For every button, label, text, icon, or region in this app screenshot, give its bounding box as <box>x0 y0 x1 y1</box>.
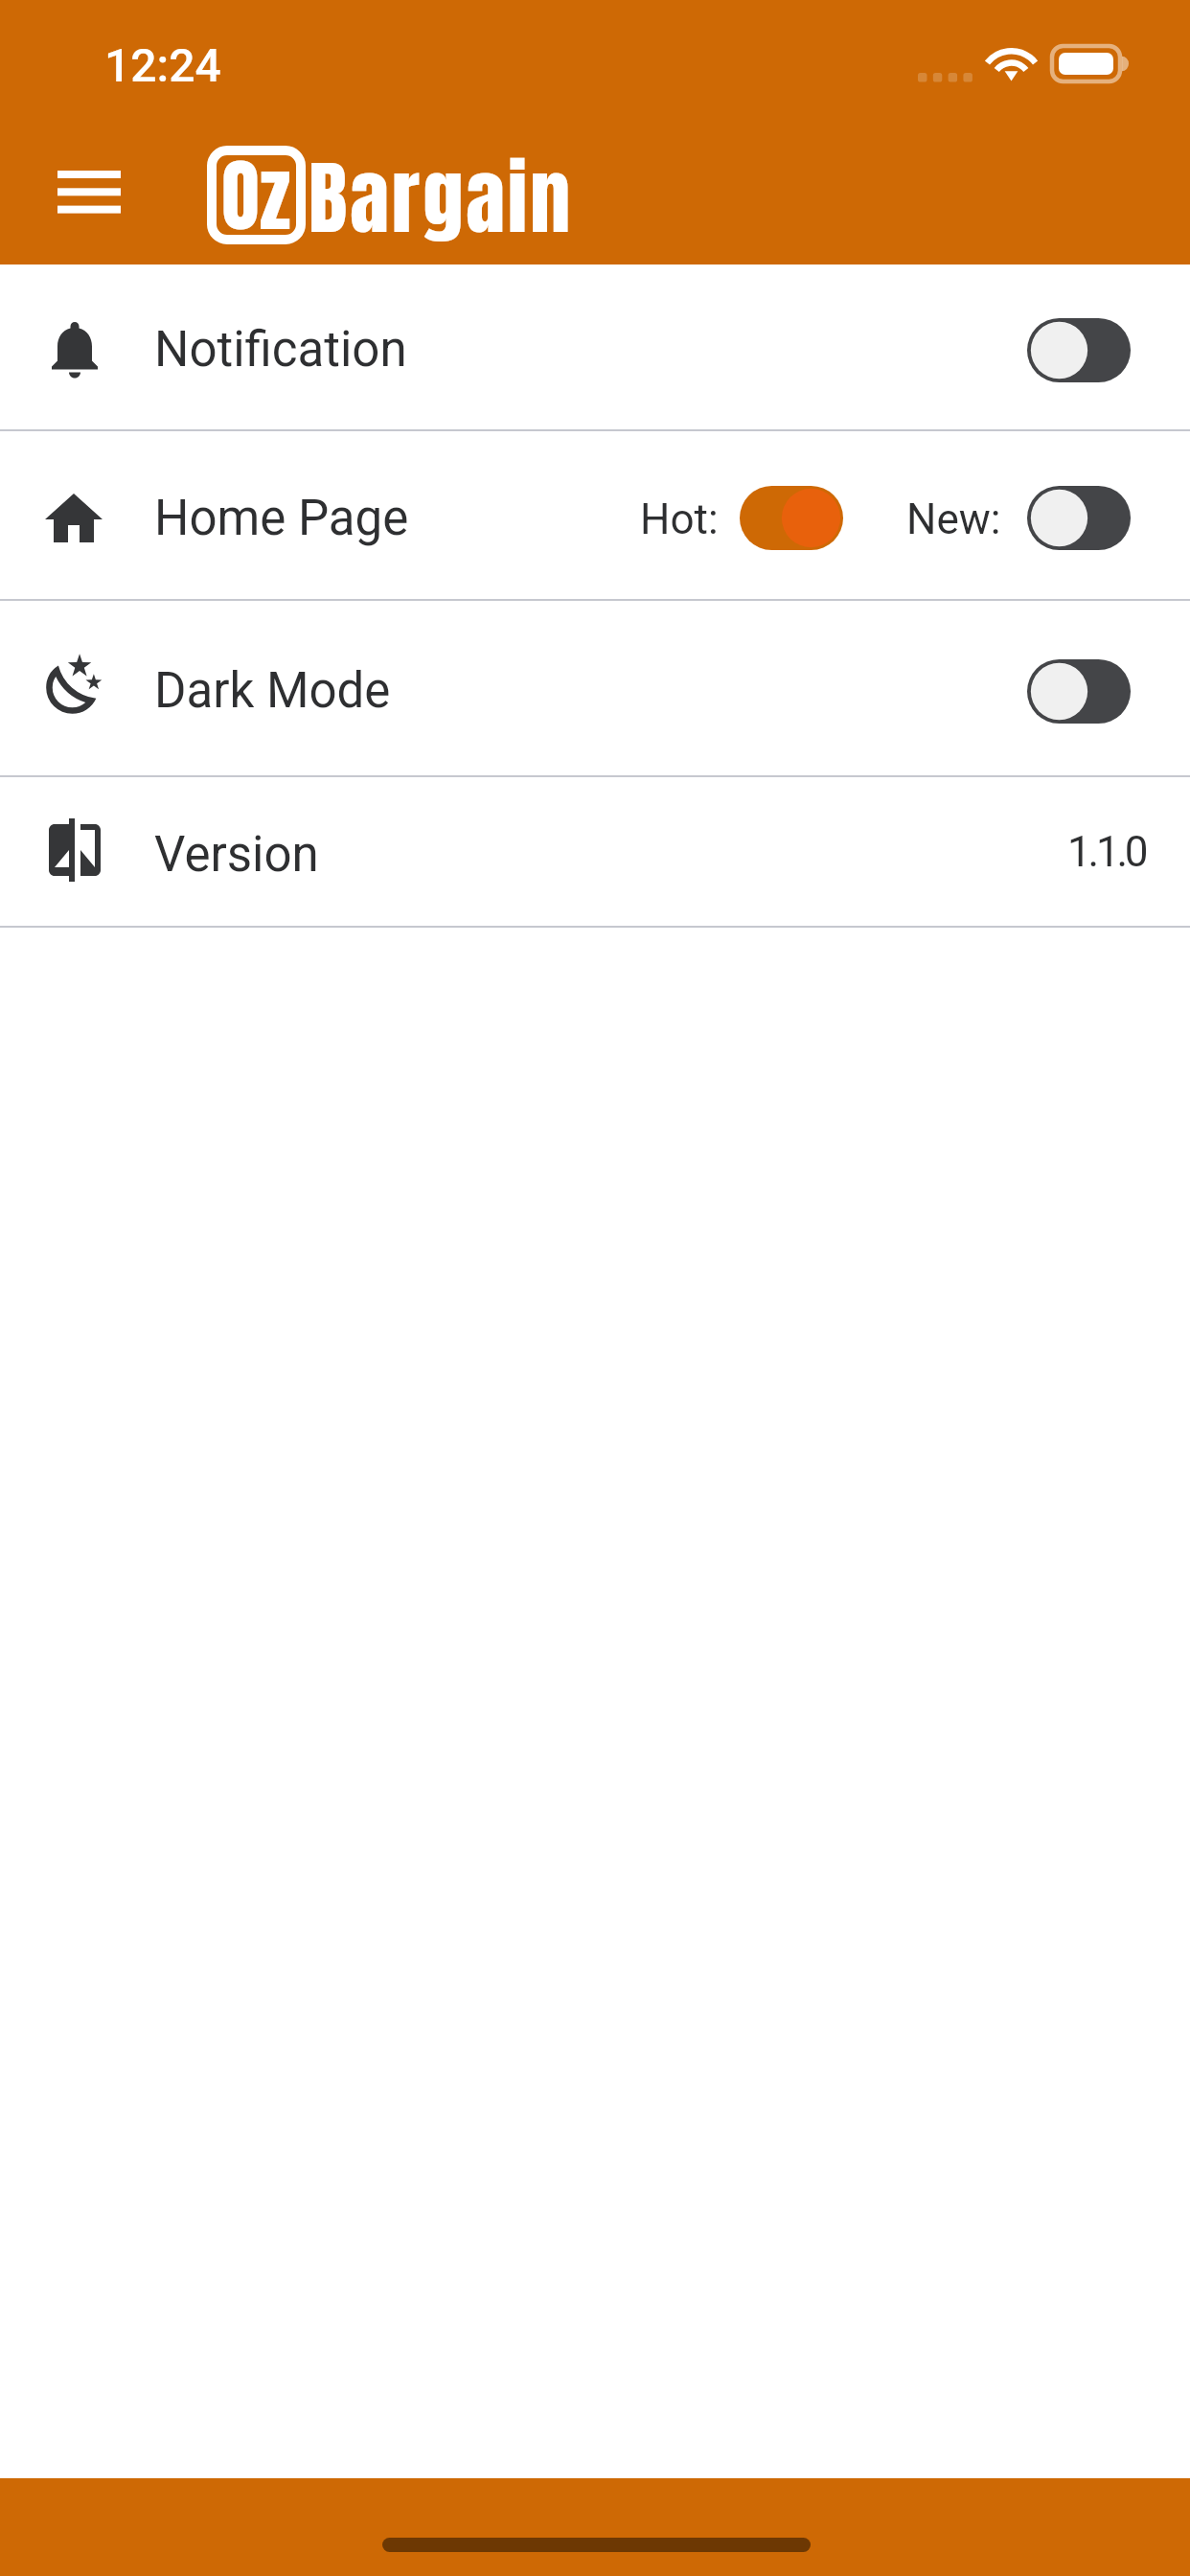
staticText: Notification <box>154 321 407 379</box>
staticText: 12:24 <box>104 38 221 92</box>
button[interactable]: Notification toggle <box>1027 318 1131 382</box>
button[interactable]: Version <box>0 777 1190 926</box>
staticText: Version <box>154 826 319 884</box>
button[interactable]: Open navigation menu <box>14 149 163 235</box>
button[interactable]: Home Page <box>0 431 1190 599</box>
staticText: Oz <box>221 137 290 255</box>
staticText: New: <box>906 494 1001 544</box>
staticText: 1.1.0 <box>1067 827 1146 877</box>
staticText: Dark Mode <box>154 662 391 720</box>
staticText: Home Page <box>154 490 409 547</box>
button[interactable]: Hot toggle <box>740 486 843 550</box>
button[interactable]: Notification <box>0 264 1190 429</box>
button[interactable]: Dark Mode <box>0 601 1190 775</box>
button[interactable]: New toggle <box>1027 486 1131 550</box>
staticText: Bargain <box>309 137 574 258</box>
button[interactable]: Dark mode toggle <box>1027 659 1131 724</box>
staticText: Hot: <box>640 494 719 544</box>
